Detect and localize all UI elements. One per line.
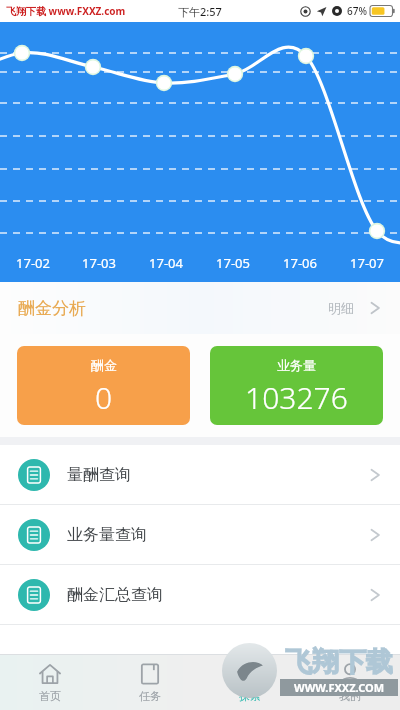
staticText: WWW.FXXZ.COM [294,680,385,695]
staticText: 业务量查询 [67,525,147,545]
staticText: 17-07 [350,254,384,272]
button[interactable]: 业务量查询 [0,505,400,564]
staticText: 业务量 [277,357,316,373]
staticText: 明细 [328,300,354,316]
staticText: 67% [347,4,367,18]
staticText: 探索 [239,689,261,703]
staticText: 酬金 [91,357,117,373]
button[interactable]: 业务量 [210,346,383,425]
staticText: 103276 [245,377,348,418]
staticText: 17-05 [216,254,250,272]
staticText: 飞翔下载 [285,645,393,679]
staticText: 任务 [139,689,161,703]
button[interactable]: 首页 [0,655,100,710]
staticText: 酬金分析 [18,298,86,319]
staticText: 飞翔下载 www.FXXZ.com [6,4,126,18]
button[interactable]: 酬金汇总查询 [0,565,400,624]
staticText: 17-06 [283,254,317,272]
staticText: 0 [95,377,113,418]
staticText: 量酬查询 [67,465,131,485]
button[interactable]: 酬金分析 [0,282,400,334]
staticText: 首页 [39,689,61,703]
staticText: 17-03 [82,254,116,272]
staticText: 下午2:57 [178,4,222,19]
staticText: 酬金汇总查询 [67,585,163,605]
button[interactable]: 任务 [100,655,200,710]
button[interactable]: 我的 [300,655,400,710]
staticText: 17-04 [149,254,183,272]
button[interactable]: 量酬查询 [0,445,400,504]
staticText: 17-02 [16,254,50,272]
button[interactable]: 酬金 [17,346,190,425]
button[interactable]: 探索 [200,655,300,710]
staticText: 我的 [339,689,361,703]
